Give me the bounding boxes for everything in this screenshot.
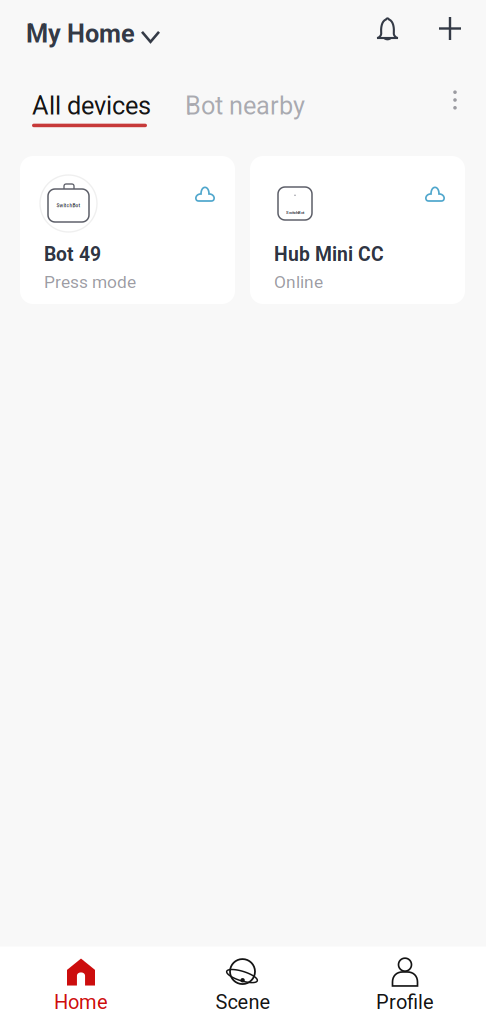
staticText: Scene xyxy=(215,991,270,1014)
staticText: Bot nearby xyxy=(185,91,305,121)
staticText: SwitchBot xyxy=(286,210,304,215)
staticText: Online xyxy=(274,272,323,292)
staticText: Home xyxy=(54,991,108,1014)
button[interactable]: My Home xyxy=(26,19,159,49)
button[interactable]: Add device xyxy=(439,17,461,40)
staticText: All devices xyxy=(32,91,151,121)
button[interactable]: More options xyxy=(440,85,470,115)
staticText: My Home xyxy=(26,19,135,49)
staticText: Bot 49 xyxy=(44,243,101,266)
button[interactable]: Bot nearby xyxy=(185,91,305,121)
staticText: Press mode xyxy=(44,272,136,292)
button[interactable]: All devices xyxy=(32,91,151,127)
button[interactable]: SwitchBot xyxy=(250,156,465,304)
button[interactable]: SwitchBot xyxy=(20,156,235,304)
button[interactable]: Scene xyxy=(162,947,324,1023)
button[interactable]: Profile xyxy=(324,947,486,1023)
button[interactable]: Home xyxy=(0,947,162,1023)
staticText: Profile xyxy=(376,991,434,1014)
staticText: Hub Mini CC xyxy=(274,243,384,266)
staticText: SwitchBot xyxy=(56,203,80,208)
button[interactable]: Notifications xyxy=(377,18,398,43)
